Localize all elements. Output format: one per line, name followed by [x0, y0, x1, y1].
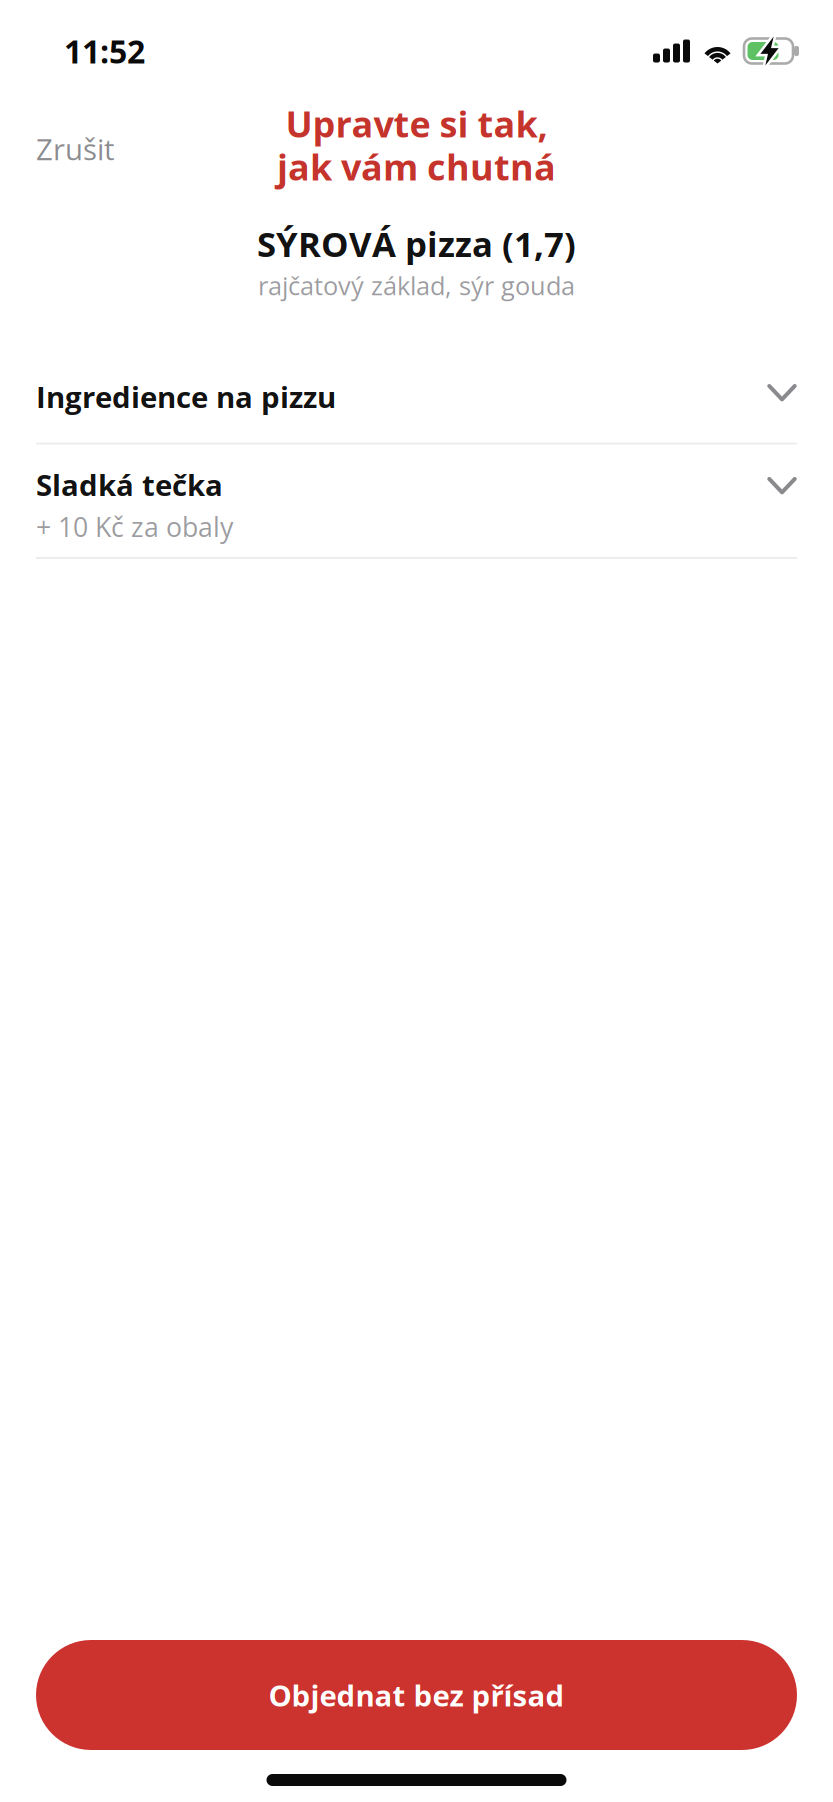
staticText: 11:52 — [64, 29, 145, 73]
staticText: + 10 Kč za obaly — [36, 509, 233, 545]
staticText: Zrušit — [36, 129, 114, 169]
staticText: Ingredience na pizzu — [36, 377, 336, 417]
staticText: SÝROVÁ pizza (1,7) — [257, 220, 576, 267]
staticText: jak vám chutná — [277, 142, 556, 191]
button[interactable]: Sladká tečka — [0, 445, 833, 557]
button[interactable]: Objednat bez přísad — [36, 1640, 797, 1750]
staticText: Upravte si tak, — [285, 99, 547, 148]
staticText: rajčatový základ, sýr gouda — [258, 268, 575, 303]
staticText: Sladká tečka — [36, 465, 223, 505]
button[interactable]: Zrušit — [0, 115, 150, 183]
button[interactable]: Ingredience na pizzu — [0, 357, 833, 443]
staticText: Objednat bez přísad — [268, 1675, 564, 1715]
